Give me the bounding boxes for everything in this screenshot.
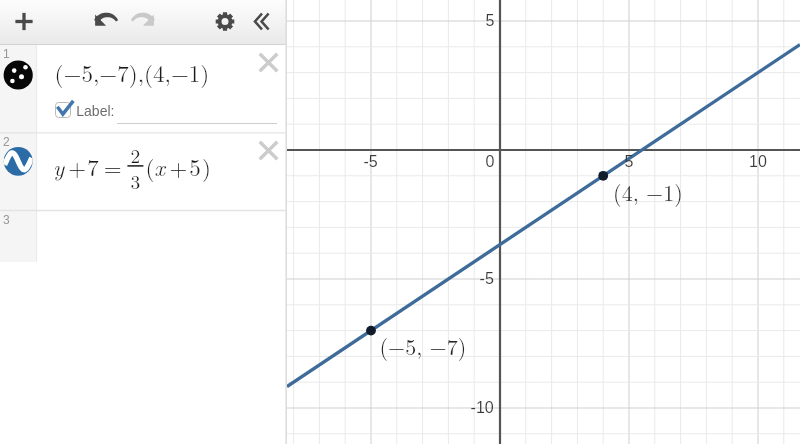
- button[interactable]: Show label: [55, 102, 71, 118]
- button[interactable]: Delete expression: [258, 52, 279, 73]
- button[interactable]: Undo: [86, 0, 126, 41]
- button[interactable]: Collapse panel: [242, 0, 282, 43]
- button[interactable]: Add expression: [4, 0, 44, 43]
- button[interactable]: Settings: [205, 0, 245, 43]
- button[interactable]: Redo: [123, 0, 163, 41]
- button[interactable]: Delete expression: [258, 140, 279, 161]
